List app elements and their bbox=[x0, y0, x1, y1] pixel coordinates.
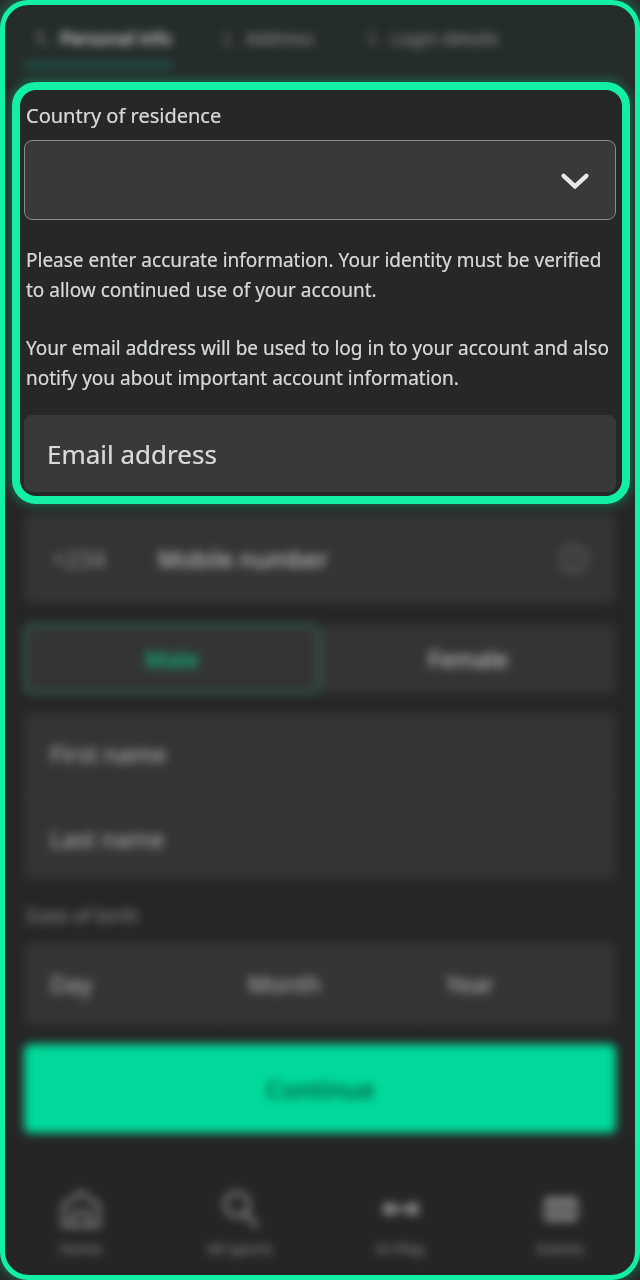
button[interactable]: Email address bbox=[24, 415, 616, 492]
button[interactable]: Home bbox=[0, 1145, 160, 1280]
button[interactable]: 1. bbox=[24, 0, 172, 81]
button[interactable]: 2. bbox=[210, 0, 304, 81]
staticText: Events bbox=[537, 1238, 584, 1258]
button[interactable]: Day bbox=[24, 942, 220, 1025]
button[interactable]: All sports bbox=[160, 1145, 320, 1280]
staticText: Login details bbox=[391, 26, 499, 51]
staticText: Personal info bbox=[60, 26, 172, 51]
staticText: Continue bbox=[266, 1072, 375, 1106]
button[interactable]: Last name bbox=[24, 797, 616, 880]
staticText: Address bbox=[246, 26, 315, 51]
staticText: 3. bbox=[366, 26, 382, 51]
staticText: Country of residence bbox=[26, 102, 222, 129]
staticText: Date of birth bbox=[26, 903, 140, 929]
staticText: 1. bbox=[35, 26, 51, 51]
button[interactable]: Continue bbox=[24, 1044, 616, 1133]
button[interactable]: Select country of residence bbox=[24, 140, 616, 220]
button[interactable]: 3. bbox=[355, 0, 488, 81]
staticText: Day bbox=[50, 968, 93, 1000]
staticText: All sports bbox=[207, 1238, 273, 1258]
button[interactable]: Male bbox=[24, 624, 320, 694]
staticText: Mobile number bbox=[158, 543, 328, 575]
staticText: Last name bbox=[50, 823, 165, 855]
button[interactable]: +234 bbox=[24, 514, 616, 604]
button[interactable]: First name bbox=[24, 712, 616, 795]
staticText: Home bbox=[59, 1238, 102, 1258]
staticText: Male bbox=[145, 643, 199, 675]
staticText: 2. bbox=[221, 26, 237, 51]
staticText: Year bbox=[446, 968, 495, 1000]
button[interactable]: Events bbox=[480, 1145, 640, 1280]
button[interactable]: Female bbox=[320, 624, 616, 694]
staticText: Email address bbox=[47, 436, 217, 471]
staticText: Month bbox=[248, 968, 322, 1000]
staticText: Your email address will be used to log i… bbox=[26, 335, 626, 390]
button[interactable]: Year bbox=[420, 942, 616, 1025]
staticText: In-Play bbox=[376, 1238, 425, 1258]
button[interactable]: In-Play bbox=[320, 1145, 480, 1280]
staticText: Please enter accurate information. Your … bbox=[26, 247, 616, 302]
staticText: +234 bbox=[52, 543, 106, 575]
button[interactable]: Month bbox=[222, 942, 418, 1025]
staticText: Female bbox=[428, 643, 508, 675]
staticText: First name bbox=[50, 738, 167, 770]
